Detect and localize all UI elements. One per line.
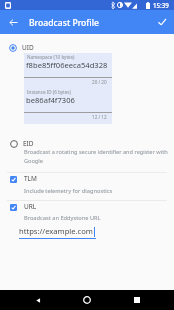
- staticText: Include telemetry for diagnostics: [24, 187, 113, 195]
- staticText: 15:39: [153, 1, 169, 9]
- staticText: Broadcast Profile: [29, 17, 100, 29]
- staticText: https://example.com: [19, 226, 93, 236]
- button[interactable]: Home: [75, 290, 99, 310]
- button[interactable]: Back: [26, 290, 50, 310]
- button[interactable]: Recents: [125, 290, 149, 310]
- button[interactable]: Save: [150, 10, 174, 34]
- staticText: Namespace (10 bytes): [27, 54, 75, 60]
- staticText: Broadcast an Eddystone URL: [24, 214, 101, 222]
- button[interactable]: https://example.com: [19, 226, 96, 236]
- button[interactable]: UID: [0, 39, 174, 56]
- staticText: TLM: [24, 174, 37, 183]
- button[interactable]: Namespace (10 bytes): [24, 53, 112, 124]
- button[interactable]: URL: [0, 201, 174, 215]
- button[interactable]: Back: [2, 10, 24, 34]
- staticText: Instance ID (6 bytes): [27, 89, 71, 95]
- staticText: EID: [23, 139, 34, 148]
- staticText: UID: [22, 43, 34, 52]
- staticText: be86af4f7306: [26, 95, 75, 105]
- staticText: 20 / 20: [92, 79, 107, 85]
- staticText: f8be85ff06eeca54d328: [26, 60, 108, 70]
- staticText: 12 / 12: [92, 114, 107, 120]
- staticText: URL: [24, 202, 37, 211]
- staticText: Broadcast a rotating secure identifier a…: [24, 148, 168, 164]
- button[interactable]: TLM: [0, 173, 174, 187]
- button[interactable]: EID: [0, 135, 174, 152]
